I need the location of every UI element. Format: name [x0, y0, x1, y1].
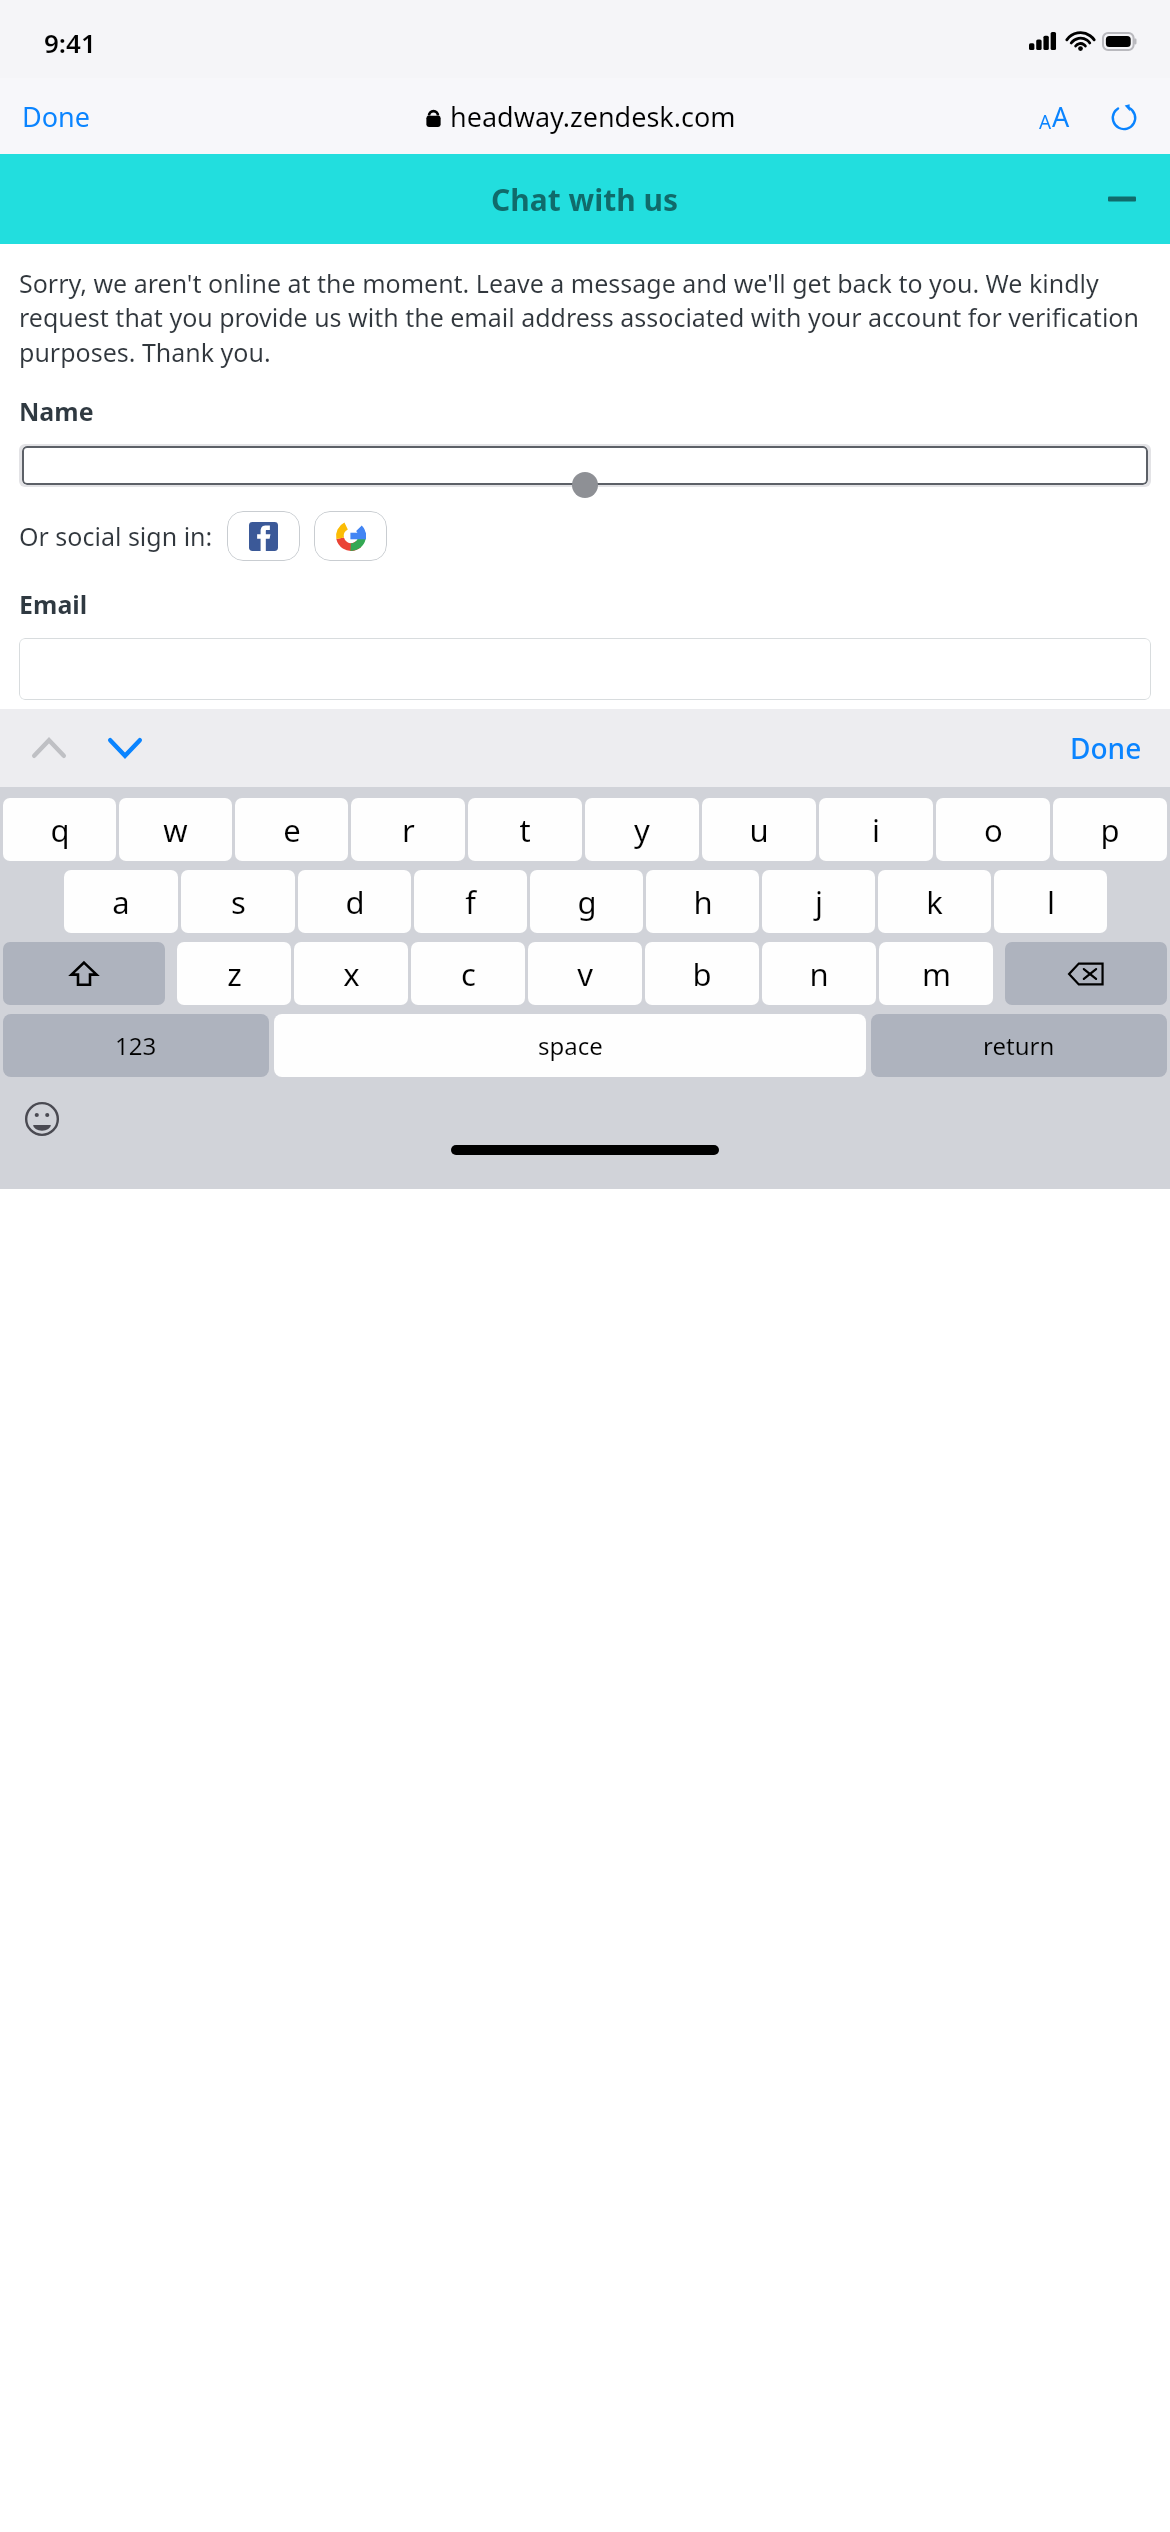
- button[interactable]: h: [646, 870, 759, 933]
- staticText: u: [749, 809, 769, 851]
- button[interactable]: p: [1053, 798, 1167, 861]
- button[interactable]: q: [3, 798, 116, 861]
- button[interactable]: y: [585, 798, 699, 861]
- staticText: b: [692, 953, 712, 995]
- staticText: l: [1047, 881, 1055, 923]
- staticText: Sorry, we aren't online at the moment. L…: [19, 266, 1151, 370]
- staticText: e: [283, 809, 301, 851]
- button[interactable]: a: [64, 870, 178, 933]
- staticText: Done: [1070, 729, 1142, 767]
- button[interactable]: b: [645, 942, 759, 1005]
- button[interactable]: e: [235, 798, 348, 861]
- staticText: m: [922, 953, 951, 995]
- button[interactable]: Backspace: [1005, 942, 1167, 1005]
- button[interactable]: i: [819, 798, 933, 861]
- button[interactable]: Sign in with Facebook: [227, 511, 300, 561]
- staticText: g: [577, 881, 597, 923]
- button[interactable]: return: [871, 1014, 1167, 1077]
- button[interactable]: x: [294, 942, 408, 1005]
- staticText: j: [815, 881, 823, 923]
- button[interactable]: f: [414, 870, 527, 933]
- staticText: headway.zendesk.com: [450, 98, 736, 135]
- staticText: o: [984, 809, 1003, 851]
- staticText: space: [538, 1029, 603, 1062]
- staticText: z: [227, 953, 242, 995]
- button[interactable]: c: [411, 942, 525, 1005]
- staticText: h: [693, 881, 713, 923]
- staticText: A: [1039, 109, 1052, 135]
- button[interactable]: Minimize chat: [1094, 175, 1150, 223]
- staticText: 9:41: [44, 25, 96, 60]
- button[interactable]: z: [177, 942, 291, 1005]
- button[interactable]: w: [119, 798, 232, 861]
- staticText: q: [50, 809, 70, 851]
- staticText: p: [1100, 809, 1120, 851]
- button[interactable]: t: [468, 798, 582, 861]
- button[interactable]: v: [528, 942, 642, 1005]
- button[interactable]: space: [274, 1014, 866, 1077]
- button[interactable]: l: [994, 870, 1107, 933]
- button[interactable]: Done: [0, 88, 106, 145]
- button[interactable]: u: [702, 798, 816, 861]
- button[interactable]: g: [530, 870, 643, 933]
- staticText: t: [519, 809, 531, 851]
- staticText: s: [231, 881, 246, 923]
- button[interactable]: Shift: [3, 942, 165, 1005]
- staticText: A: [1052, 98, 1070, 135]
- button[interactable]: Sign in with Google: [314, 511, 387, 561]
- button[interactable]: r: [351, 798, 465, 861]
- staticText: 123: [115, 1029, 157, 1062]
- button[interactable]: j: [762, 870, 875, 933]
- staticText: return: [983, 1029, 1055, 1062]
- button[interactable]: 123: [3, 1014, 269, 1077]
- button[interactable]: Emoji keyboard: [14, 1093, 70, 1145]
- staticText: v: [577, 953, 593, 995]
- staticText: a: [112, 881, 130, 923]
- staticText: c: [461, 953, 476, 995]
- staticText: y: [634, 809, 650, 851]
- staticText: d: [345, 881, 365, 923]
- button[interactable]: Chat with us: [0, 154, 1170, 244]
- staticText: r: [402, 809, 415, 851]
- button[interactable]: o: [936, 798, 1050, 861]
- staticText: f: [465, 881, 476, 923]
- staticText: n: [809, 953, 829, 995]
- button[interactable]: d: [298, 870, 411, 933]
- staticText: Or social sign in:: [19, 519, 213, 553]
- staticText: i: [872, 809, 880, 851]
- button[interactable]: m: [879, 942, 993, 1005]
- staticText: k: [926, 881, 943, 923]
- staticText: Chat with us: [491, 179, 679, 220]
- staticText: Name: [19, 394, 94, 428]
- staticText: x: [343, 953, 360, 995]
- staticText: w: [163, 809, 188, 851]
- button[interactable]: Text size: [1031, 88, 1078, 145]
- button[interactable]: k: [878, 870, 991, 933]
- button[interactable]: s: [181, 870, 295, 933]
- button[interactable]: Previous field: [18, 724, 80, 772]
- button[interactable]: [22, 446, 1148, 485]
- button[interactable]: Done: [1058, 719, 1154, 777]
- button[interactable]: n: [762, 942, 876, 1005]
- button[interactable]: Next field: [94, 724, 156, 772]
- staticText: Done: [22, 98, 90, 135]
- staticText: Email: [19, 587, 88, 621]
- button[interactable]: Reload: [1102, 95, 1146, 139]
- button[interactable]: [19, 638, 1151, 700]
